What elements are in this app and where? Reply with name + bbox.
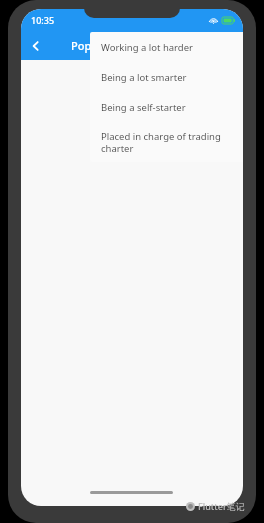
staticText: Being a self-starter [101,101,186,114]
staticText: Working a lot harder [101,41,193,54]
staticText: Being a lot smarter [101,71,187,84]
button[interactable]: Being a lot smarter [90,62,243,92]
button[interactable]: Placed in charge of trading charter [90,122,243,162]
button[interactable]: Working a lot harder [90,32,243,62]
staticText: Placed in charge of trading charter [101,130,240,155]
staticText: Flutter笔记 [198,500,245,512]
button[interactable]: Being a self-starter [90,92,243,122]
button[interactable]: Back [21,31,51,60]
staticText: 10:35 [31,14,55,26]
staticText: PopupMenu [71,38,136,53]
